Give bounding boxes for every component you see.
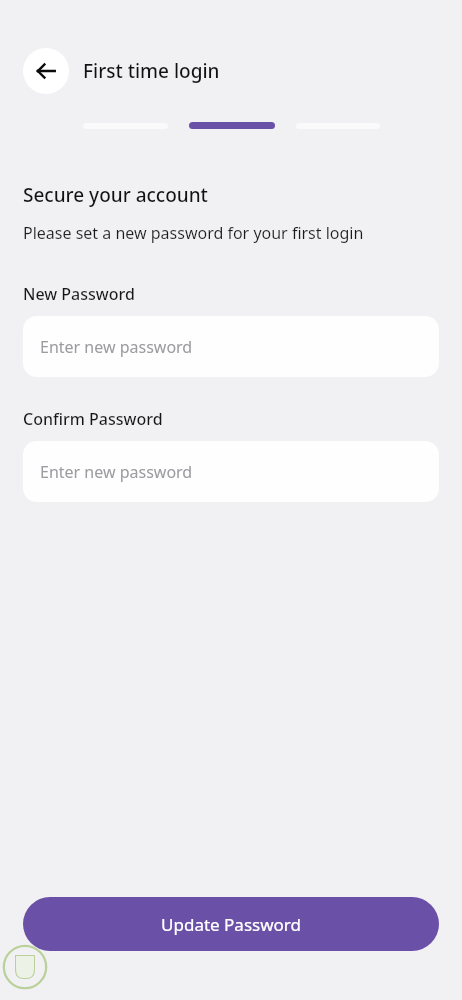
- staticText: Enter new password: [40, 461, 193, 483]
- staticText: Enter new password: [40, 336, 193, 358]
- button[interactable]: Update Password: [23, 897, 439, 951]
- staticText: Please set a new password for your first…: [23, 222, 364, 244]
- staticText: Secure your account: [23, 182, 208, 208]
- button[interactable]: Back: [23, 48, 69, 94]
- staticText: Update Password: [161, 913, 301, 936]
- button[interactable]: Enter new password: [23, 316, 439, 377]
- button[interactable]: Enter new password: [23, 441, 439, 502]
- staticText: New Password: [23, 283, 135, 305]
- staticText: First time login: [83, 58, 220, 84]
- staticText: Confirm Password: [23, 408, 163, 430]
